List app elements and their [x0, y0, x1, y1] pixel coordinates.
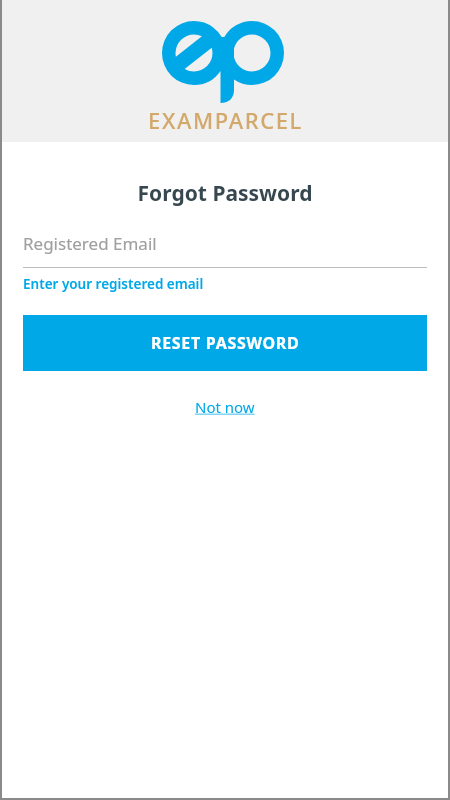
other: ExamParcel logo: [160, 7, 290, 105]
staticText: EXAMPARCEL: [148, 105, 303, 135]
staticText: Registered Email: [23, 232, 157, 255]
button[interactable]: Registered Email: [23, 232, 427, 268]
staticText: Enter your registered email: [23, 275, 204, 293]
staticText: RESET PASSWORD: [151, 332, 300, 354]
button[interactable]: RESET PASSWORD: [23, 315, 427, 371]
staticText: Not now: [195, 397, 255, 417]
staticText: Forgot Password: [0, 179, 450, 208]
button[interactable]: Not now: [185, 391, 265, 423]
